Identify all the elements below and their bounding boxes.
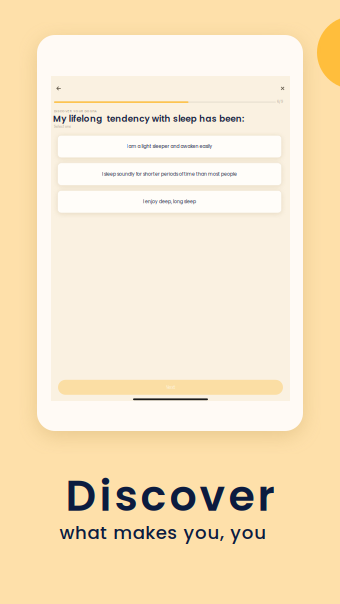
- button[interactable]: I enjoy deep, long sleep: [58, 190, 282, 213]
- staticText: DISCOVER YOUR DOSHA: [54, 109, 96, 113]
- button[interactable]: Next: [58, 380, 283, 395]
- staticText: My lifelong tendency with sleep has been…: [53, 113, 244, 125]
- staticText: 6/9: [277, 99, 283, 104]
- staticText: Discover: [65, 466, 274, 526]
- staticText: Next: [165, 384, 175, 391]
- button[interactable]: Close: [277, 83, 288, 94]
- button[interactable]: I sleep soundly for shorter periods of t…: [58, 163, 282, 185]
- button[interactable]: I am a light sleeper and awaken easily: [58, 135, 282, 158]
- staticText: Select one: [54, 125, 71, 129]
- staticText: I enjoy deep, long sleep: [143, 198, 196, 205]
- staticText: I sleep soundly for shorter periods of t…: [102, 171, 237, 177]
- staticText: what makes you, you: [59, 520, 266, 545]
- button[interactable]: Back: [53, 83, 64, 94]
- staticText: I am a light sleeper and awaken easily: [127, 143, 213, 150]
